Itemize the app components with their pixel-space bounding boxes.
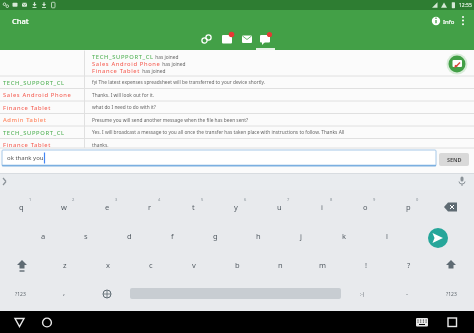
staticText: 5 bbox=[201, 197, 204, 202]
staticText: ok thank you bbox=[7, 154, 44, 162]
staticText: ? bbox=[407, 260, 411, 270]
staticText: c bbox=[149, 260, 153, 270]
button[interactable]: l bbox=[375, 229, 399, 243]
button[interactable] bbox=[443, 313, 462, 331]
button[interactable] bbox=[413, 313, 432, 331]
button[interactable]: u bbox=[267, 200, 291, 214]
button[interactable]: r bbox=[138, 200, 162, 214]
staticText: g bbox=[213, 231, 218, 241]
staticText: f bbox=[171, 231, 174, 241]
staticText: q bbox=[19, 202, 24, 212]
staticText: x bbox=[106, 260, 110, 270]
staticText: w bbox=[61, 202, 67, 212]
button[interactable]: w bbox=[52, 200, 76, 214]
button[interactable]: v bbox=[182, 258, 206, 272]
staticText: Finance Tablet bbox=[3, 141, 52, 149]
button[interactable] bbox=[218, 30, 238, 48]
staticText: Yes. I will broadcast a message to you a… bbox=[92, 129, 345, 136]
staticText: b bbox=[235, 260, 240, 270]
staticText: Sales Android Phone bbox=[92, 60, 161, 68]
staticText: m bbox=[319, 260, 327, 270]
staticText: SEND bbox=[447, 156, 462, 163]
button[interactable]: . bbox=[395, 285, 419, 299]
button[interactable] bbox=[428, 14, 458, 28]
button[interactable]: o bbox=[353, 200, 377, 214]
button[interactable]: j bbox=[289, 229, 313, 243]
staticText: what do I need to do with it? bbox=[92, 104, 156, 111]
staticText: TECH_SUPPORT_CL bbox=[3, 79, 65, 87]
staticText: a bbox=[41, 231, 46, 241]
button[interactable]: p bbox=[396, 200, 420, 214]
button[interactable]: h bbox=[246, 229, 270, 243]
staticText: p bbox=[406, 202, 411, 212]
button[interactable]: a bbox=[31, 229, 55, 243]
button[interactable]: SEND bbox=[439, 153, 469, 166]
staticText: 4 bbox=[158, 197, 161, 202]
button[interactable]: n bbox=[268, 258, 292, 272]
button[interactable]: i bbox=[310, 200, 334, 214]
staticText: ?123 bbox=[15, 291, 26, 298]
button[interactable]: k bbox=[332, 229, 356, 243]
staticText: Thanks. I will look out for it. bbox=[92, 92, 155, 99]
button[interactable] bbox=[38, 313, 57, 331]
staticText: fyi The latest expenses spreadsheet will… bbox=[92, 79, 266, 86]
staticText: Sales Android Phone bbox=[3, 91, 72, 99]
button[interactable] bbox=[10, 313, 29, 331]
button[interactable]: x bbox=[96, 258, 120, 272]
staticText: n bbox=[278, 260, 283, 270]
staticText: u bbox=[277, 202, 282, 212]
button[interactable] bbox=[2, 150, 436, 166]
button[interactable]: s bbox=[74, 229, 98, 243]
staticText: , bbox=[63, 287, 66, 297]
button[interactable]: t bbox=[181, 200, 205, 214]
button[interactable]: f bbox=[160, 229, 184, 243]
button[interactable]: ?123 bbox=[439, 287, 463, 301]
staticText: s bbox=[84, 231, 88, 241]
staticText: has joined bbox=[141, 68, 166, 75]
button[interactable]: b bbox=[225, 258, 249, 272]
button[interactable]: ? bbox=[397, 258, 421, 272]
button[interactable] bbox=[196, 30, 216, 48]
staticText: l bbox=[386, 231, 388, 241]
button[interactable]: c bbox=[139, 258, 163, 272]
button[interactable]: , bbox=[52, 285, 76, 299]
staticText: Admin Tablet bbox=[3, 116, 47, 124]
staticText: ?123 bbox=[446, 291, 457, 298]
button[interactable] bbox=[428, 228, 448, 248]
staticText: 3 bbox=[115, 197, 118, 202]
staticText: has joined bbox=[154, 54, 179, 61]
staticText: j bbox=[300, 231, 302, 241]
staticText: TECH_SUPPORT_CL bbox=[92, 53, 154, 61]
staticText: ! bbox=[365, 260, 368, 270]
staticText: y bbox=[234, 202, 238, 212]
staticText: z bbox=[63, 260, 67, 270]
button[interactable]: m bbox=[311, 258, 335, 272]
button[interactable]: d bbox=[117, 229, 141, 243]
staticText: e bbox=[105, 202, 110, 212]
button[interactable]: q bbox=[9, 200, 33, 214]
button[interactable] bbox=[257, 30, 277, 48]
button[interactable] bbox=[458, 12, 470, 30]
staticText: Finance Tablet bbox=[3, 104, 52, 112]
staticText: 8 bbox=[330, 197, 333, 202]
button[interactable] bbox=[238, 30, 258, 48]
staticText: d bbox=[127, 231, 132, 241]
staticText: t bbox=[192, 202, 195, 212]
button[interactable]: z bbox=[53, 258, 77, 272]
button[interactable]: e bbox=[95, 200, 119, 214]
button[interactable]: y bbox=[224, 200, 248, 214]
button[interactable]: ?123 bbox=[8, 287, 32, 301]
staticText: 6 bbox=[244, 197, 247, 202]
staticText: h bbox=[256, 231, 261, 241]
staticText: has joined bbox=[161, 61, 186, 68]
button[interactable]: :-) bbox=[350, 287, 374, 301]
button[interactable]: ! bbox=[354, 258, 378, 272]
staticText: 2 bbox=[72, 197, 75, 202]
staticText: i bbox=[321, 202, 323, 212]
staticText: 0 bbox=[416, 197, 419, 202]
button[interactable]: g bbox=[203, 229, 227, 243]
staticText: o bbox=[363, 202, 368, 212]
staticText: Info bbox=[443, 18, 455, 26]
staticText: 1 bbox=[29, 197, 32, 202]
